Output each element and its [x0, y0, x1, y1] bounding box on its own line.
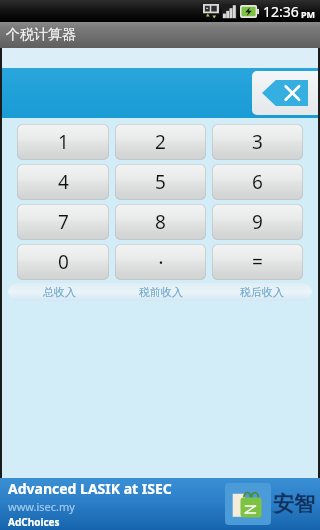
staticText: 9 — [252, 209, 263, 235]
button[interactable]: Backspace — [252, 71, 318, 115]
button[interactable]: 5 — [115, 164, 206, 200]
staticText: 5 — [155, 169, 166, 195]
button[interactable]: 7 — [17, 204, 109, 240]
button[interactable]: 9 — [212, 204, 303, 240]
button[interactable]: Advanced LASIK at ISEC — [0, 478, 320, 530]
button[interactable]: 0 — [17, 244, 109, 280]
staticText: 税前收入 — [139, 285, 183, 299]
button[interactable]: 1 — [17, 124, 109, 160]
staticText: · — [158, 249, 164, 276]
button[interactable]: 3 — [212, 124, 303, 160]
button[interactable]: 4 — [17, 164, 109, 200]
button[interactable]: 8 — [115, 204, 206, 240]
staticText: 税后收入 — [240, 285, 284, 299]
staticText: 0 — [58, 249, 69, 275]
staticText: 8 — [155, 209, 166, 235]
staticText: 总收入 — [43, 285, 76, 299]
staticText: 4 — [58, 169, 69, 195]
staticText: 6 — [252, 169, 263, 195]
staticText: Advanced LASIK at ISEC — [8, 479, 172, 498]
staticText: 个税计算器 — [6, 26, 76, 44]
staticText: 7 — [58, 209, 69, 235]
button[interactable]: 2 — [115, 124, 206, 160]
button[interactable]: · — [115, 244, 206, 280]
button[interactable]: = — [212, 244, 303, 280]
button[interactable]: 总收入 — [8, 283, 110, 301]
staticText: PM — [301, 8, 316, 20]
staticText: 1 — [58, 129, 69, 155]
staticText: www.isec.my — [8, 499, 75, 514]
button[interactable]: 税后收入 — [211, 283, 312, 301]
staticText: 2 — [155, 129, 166, 155]
staticText: = — [252, 249, 263, 275]
staticText: AdChoices — [8, 515, 60, 529]
staticText: 3 — [252, 129, 263, 155]
button[interactable]: 税前收入 — [110, 283, 211, 301]
button[interactable]: 6 — [212, 164, 303, 200]
staticText: 安智 — [273, 491, 315, 517]
staticText: 12:36 — [263, 2, 299, 21]
